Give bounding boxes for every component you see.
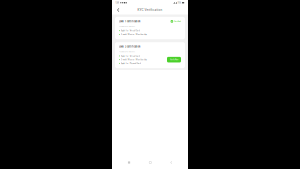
staticText: Apply for Virtual Card <box>121 30 140 32</box>
staticText: Certified <box>174 20 181 22</box>
staticText: Features & Permissions: <box>119 26 135 27</box>
button[interactable]: Back <box>115 6 121 14</box>
button[interactable]: Back <box>167 158 175 167</box>
staticText: Level 2 certification <box>119 45 140 48</box>
button[interactable]: Recent apps <box>125 158 133 167</box>
staticText: Apply for Physical Card <box>121 62 141 64</box>
staticText: 2-week Master Membership <box>121 33 147 35</box>
staticText: 75% <box>177 2 181 4</box>
staticText: Features & Permissions: <box>119 51 135 53</box>
button[interactable]: Home <box>146 158 154 167</box>
staticText: KYC Verification <box>137 8 162 12</box>
staticText: Verify Now <box>170 59 178 61</box>
button[interactable]: Verify Now <box>167 57 181 62</box>
staticText: 12:01 <box>115 2 119 4</box>
staticText: Level 1 certification <box>119 20 140 23</box>
staticText: Apply for Virtual Card <box>121 55 140 57</box>
staticText: 2-week Master Membership <box>121 59 147 61</box>
